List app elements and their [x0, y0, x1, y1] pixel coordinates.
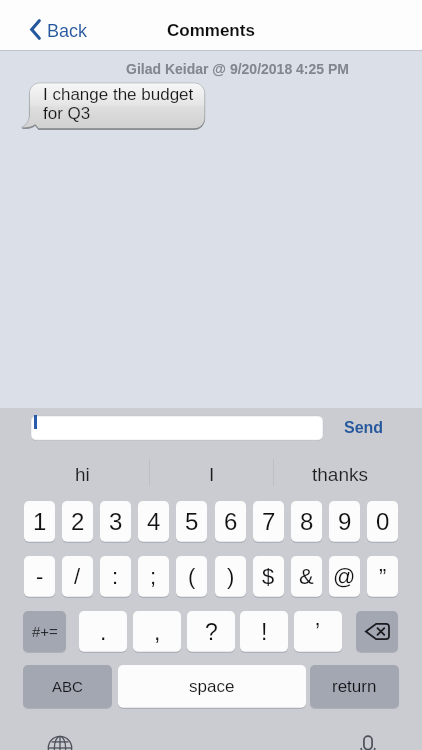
button[interactable]: thanks	[275, 454, 404, 495]
button[interactable]: $	[253, 556, 284, 598]
button[interactable]: I	[147, 454, 276, 495]
staticText: 9	[338, 508, 352, 535]
staticText: :	[112, 564, 119, 589]
staticText: (	[188, 564, 196, 589]
staticText: #+=	[32, 623, 58, 640]
staticText: -	[36, 564, 44, 589]
staticText: Comments	[167, 21, 255, 40]
staticText: space	[189, 677, 235, 696]
staticText: I	[209, 464, 215, 485]
staticText: ”	[379, 564, 387, 589]
button[interactable]: hi	[18, 454, 147, 495]
button[interactable]: Back	[22, 13, 96, 46]
button[interactable]: (	[176, 556, 207, 598]
button[interactable]: return	[310, 665, 399, 709]
staticText: 3	[109, 508, 123, 535]
button[interactable]: 6	[215, 501, 246, 543]
staticText: I change the budget for Q3	[43, 85, 194, 123]
button[interactable]: ”	[367, 556, 398, 598]
button[interactable]: ’	[294, 611, 342, 653]
staticText: hi	[75, 464, 90, 485]
staticText: $	[262, 564, 275, 589]
staticText: ABC	[52, 678, 83, 695]
staticText: 6	[224, 508, 238, 535]
button[interactable]: 8	[291, 501, 322, 543]
button[interactable]: Backspace	[356, 611, 398, 653]
button[interactable]: 7	[253, 501, 284, 543]
staticText: )	[227, 564, 235, 589]
button[interactable]: Send	[337, 413, 391, 443]
button[interactable]	[31, 416, 323, 441]
button[interactable]: ,	[133, 611, 181, 653]
button[interactable]: )	[215, 556, 246, 598]
button[interactable]: /	[62, 556, 93, 598]
staticText: 5	[185, 508, 199, 535]
button[interactable]: 1	[24, 501, 55, 543]
staticText: 4	[147, 508, 161, 535]
button[interactable]: ;	[138, 556, 169, 598]
staticText: 1	[33, 508, 47, 535]
staticText: &	[299, 564, 314, 589]
button[interactable]: ?	[187, 611, 235, 653]
staticText: 8	[300, 508, 314, 535]
staticText: thanks	[312, 464, 368, 485]
staticText: !	[261, 619, 268, 645]
button[interactable]: &	[291, 556, 322, 598]
staticText: return	[332, 677, 377, 696]
button[interactable]: :	[100, 556, 131, 598]
staticText: ;	[150, 564, 157, 589]
button[interactable]: !	[240, 611, 288, 653]
staticText: ?	[205, 619, 218, 645]
button[interactable]: #+=	[23, 611, 66, 653]
button[interactable]: 9	[329, 501, 360, 543]
button[interactable]: @	[329, 556, 360, 598]
staticText: ,	[154, 619, 161, 645]
staticText: 2	[71, 508, 85, 535]
button[interactable]: space	[118, 665, 306, 709]
staticText: ’	[315, 619, 321, 645]
button[interactable]: .	[79, 611, 127, 653]
staticText: @	[333, 564, 356, 589]
button[interactable]: 5	[176, 501, 207, 543]
button[interactable]: 0	[367, 501, 398, 543]
button[interactable]: Change keyboard language	[41, 729, 79, 750]
staticText: Send	[344, 419, 384, 437]
staticText: Gilad Keidar @ 9/20/2018 4:25 PM	[126, 61, 349, 77]
staticText: Back	[47, 21, 88, 41]
staticText: 7	[262, 508, 276, 535]
button[interactable]: 3	[100, 501, 131, 543]
button[interactable]: ABC	[23, 665, 112, 709]
staticText: 0	[376, 508, 390, 535]
button[interactable]: Dictate	[350, 729, 386, 750]
button[interactable]: 2	[62, 501, 93, 543]
button[interactable]: 4	[138, 501, 169, 543]
staticText: /	[74, 564, 81, 589]
staticText: .	[100, 619, 107, 645]
button[interactable]: -	[24, 556, 55, 598]
